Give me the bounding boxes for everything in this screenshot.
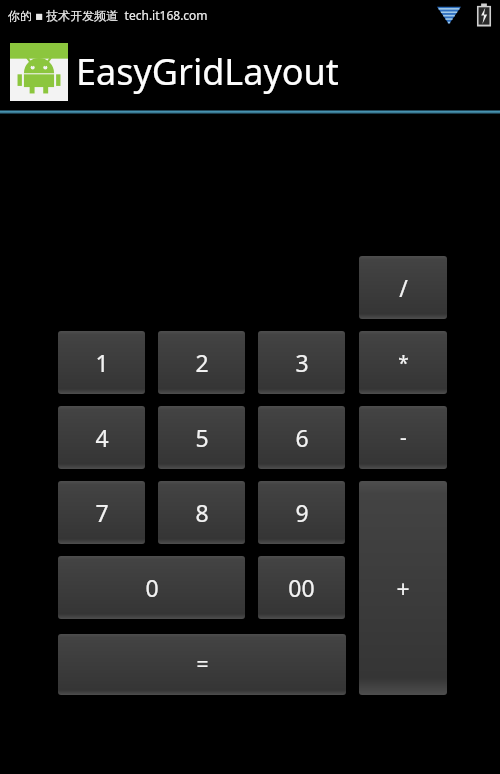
staticText: 5 xyxy=(195,422,209,453)
staticText: 3 xyxy=(295,347,309,378)
button[interactable]: 1 xyxy=(58,331,145,394)
staticText: 0 xyxy=(145,572,159,603)
button[interactable]: 7 xyxy=(58,481,145,544)
button[interactable]: + xyxy=(359,481,447,695)
staticText: - xyxy=(400,423,407,452)
staticText: 9 xyxy=(295,497,309,528)
button[interactable]: * xyxy=(359,331,447,394)
button[interactable]: / xyxy=(359,256,447,319)
staticText: 4 xyxy=(95,422,109,453)
staticText: 2 xyxy=(195,347,209,378)
staticText: 8 xyxy=(195,497,209,528)
button[interactable]: - xyxy=(359,406,447,469)
staticText: EasyGridLayout xyxy=(76,47,339,96)
button[interactable]: 4 xyxy=(58,406,145,469)
button[interactable]: 2 xyxy=(158,331,245,394)
staticText: + xyxy=(396,573,410,604)
other: Downloading xyxy=(436,4,462,26)
other: Battery charging xyxy=(476,3,492,27)
button[interactable]: 00 xyxy=(258,556,345,619)
button[interactable]: 3 xyxy=(258,331,345,394)
staticText: 你的 ▪ 技术开发频道 tech.it168.com xyxy=(8,7,208,23)
staticText: 6 xyxy=(295,422,309,453)
button[interactable]: = xyxy=(58,634,346,695)
button[interactable]: 0 xyxy=(58,556,245,619)
button[interactable]: 5 xyxy=(158,406,245,469)
staticText: * xyxy=(398,350,409,376)
staticText: 7 xyxy=(95,497,109,528)
staticText: 00 xyxy=(288,572,315,603)
staticText: = xyxy=(196,650,209,679)
button[interactable]: 6 xyxy=(258,406,345,469)
staticText: 1 xyxy=(95,347,109,378)
button[interactable]: 9 xyxy=(258,481,345,544)
button[interactable]: 8 xyxy=(158,481,245,544)
staticText: / xyxy=(399,272,408,303)
